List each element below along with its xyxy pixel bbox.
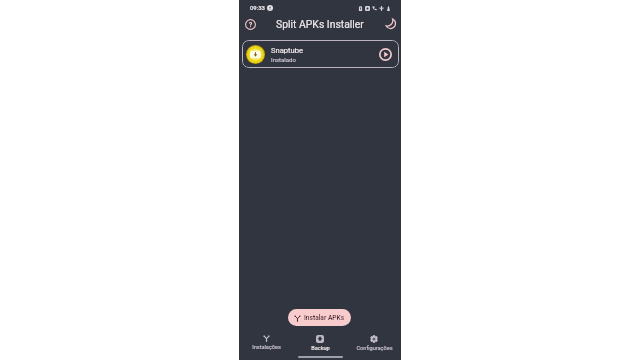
button[interactable]: Snaptube (242, 40, 399, 68)
button[interactable]: Backup (293, 333, 347, 353)
staticText: Instalado (271, 56, 296, 63)
button[interactable]: Install app (378, 47, 393, 62)
staticText: ? (249, 21, 253, 29)
button[interactable]: Configurações (347, 333, 401, 353)
staticText: Backup (311, 345, 330, 352)
staticText: Instalar APKs (304, 314, 345, 322)
button[interactable]: Toggle dark theme (383, 16, 398, 31)
staticText: 09:33 (250, 5, 265, 12)
button[interactable]: Instalar APKs (288, 309, 351, 326)
staticText: Split APKs Installer (276, 18, 364, 30)
staticText: Snaptube (271, 46, 304, 55)
button[interactable]: Instalações (239, 333, 293, 353)
staticText: Instalações (252, 344, 281, 351)
button[interactable]: Help (243, 17, 258, 32)
staticText: Configurações (356, 345, 393, 352)
